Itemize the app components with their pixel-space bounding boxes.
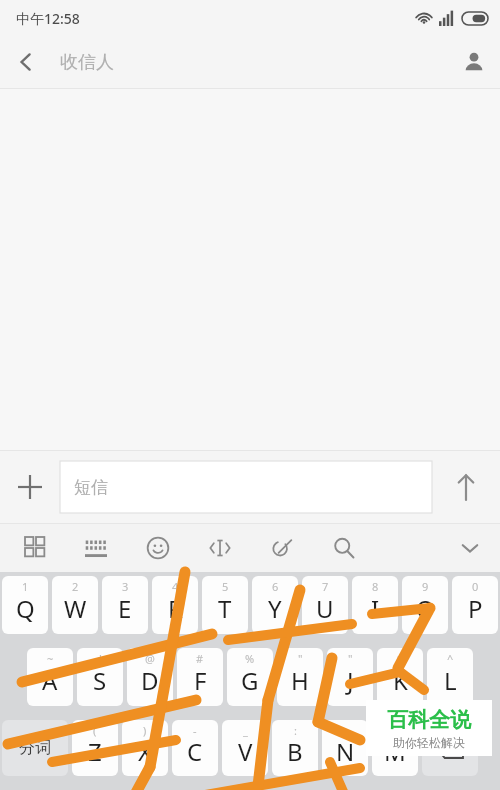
- button[interactable]: Emoji: [136, 526, 180, 570]
- staticText: X: [138, 735, 153, 768]
- button[interactable]: *: [377, 648, 423, 706]
- staticText: 5: [222, 579, 229, 594]
- staticText: M: [384, 735, 406, 768]
- button[interactable]: 1: [2, 576, 48, 634]
- staticText: #: [196, 651, 204, 666]
- staticText: T: [218, 592, 232, 625]
- staticText: L: [444, 664, 457, 697]
- button[interactable]: ?: [372, 720, 418, 776]
- staticText: ;: [344, 723, 347, 738]
- staticText: (: [93, 723, 97, 738]
- staticText: E: [118, 592, 132, 625]
- button[interactable]: Attach: [261, 526, 305, 570]
- button[interactable]: 2: [52, 576, 98, 634]
- staticText: 4: [172, 579, 179, 594]
- staticText: 百科全说: [387, 707, 471, 733]
- staticText: 6: [272, 579, 279, 594]
- button[interactable]: ;: [322, 720, 368, 776]
- staticText: ^: [447, 651, 454, 666]
- staticText: 助你轻松解决: [393, 735, 465, 750]
- staticText: K: [393, 664, 408, 697]
- staticText: F: [194, 664, 207, 697]
- button[interactable]: ~: [27, 648, 73, 706]
- button[interactable]: 6: [252, 576, 298, 634]
- staticText: 3: [122, 579, 129, 594]
- staticText: 2: [72, 579, 79, 594]
- button[interactable]: Backspace: [422, 720, 478, 776]
- button[interactable]: Send: [432, 453, 500, 521]
- staticText: U: [316, 592, 334, 625]
- button[interactable]: ): [122, 720, 168, 776]
- staticText: R: [168, 592, 183, 625]
- button[interactable]: 9: [402, 576, 448, 634]
- staticText: ": [298, 651, 303, 666]
- button[interactable]: (: [72, 720, 118, 776]
- button[interactable]: Edit cursor: [198, 526, 242, 570]
- staticText: ~: [47, 651, 54, 666]
- button[interactable]: Hide keyboard: [448, 526, 492, 570]
- staticText: 0: [472, 579, 479, 594]
- staticText: %: [245, 651, 255, 666]
- staticText: 1: [22, 579, 29, 594]
- button[interactable]: 5: [202, 576, 248, 634]
- staticText: C: [187, 735, 203, 768]
- staticText: J: [347, 664, 354, 697]
- staticText: G: [241, 664, 259, 697]
- button[interactable]: Apps: [14, 526, 58, 570]
- staticText: 分词: [19, 738, 51, 758]
- staticText: 8: [372, 579, 379, 594]
- button[interactable]: @: [127, 648, 173, 706]
- button[interactable]: Back: [0, 36, 52, 88]
- staticText: ): [143, 723, 147, 738]
- staticText: A: [42, 664, 58, 697]
- staticText: W: [64, 592, 87, 625]
- button[interactable]: %: [227, 648, 273, 706]
- staticText: H: [291, 664, 309, 697]
- staticText: 短信: [74, 477, 108, 498]
- button[interactable]: 短信: [60, 461, 432, 513]
- button[interactable]: :: [272, 720, 318, 776]
- button[interactable]: 7: [302, 576, 348, 634]
- staticText: -: [193, 723, 197, 738]
- button[interactable]: ": [277, 648, 323, 706]
- staticText: 7: [322, 579, 329, 594]
- staticText: :: [294, 723, 297, 738]
- staticText: *: [397, 651, 404, 666]
- staticText: N: [336, 735, 355, 768]
- staticText: Q: [16, 592, 35, 625]
- button[interactable]: _: [222, 720, 268, 776]
- staticText: ": [348, 651, 353, 666]
- button[interactable]: 分词: [2, 720, 68, 776]
- staticText: 中午12:58: [16, 9, 80, 28]
- staticText: B: [287, 735, 303, 768]
- staticText: ?: [393, 723, 398, 738]
- button[interactable]: 4: [152, 576, 198, 634]
- button[interactable]: -: [172, 720, 218, 776]
- staticText: O: [416, 592, 435, 625]
- staticText: Y: [268, 592, 282, 625]
- button[interactable]: 8: [352, 576, 398, 634]
- button[interactable]: 0: [452, 576, 498, 634]
- button[interactable]: 3: [102, 576, 148, 634]
- staticText: D: [141, 664, 159, 697]
- staticText: _: [243, 723, 248, 738]
- button[interactable]: ^: [427, 648, 473, 706]
- staticText: 9: [422, 579, 429, 594]
- button[interactable]: Keyboard: [74, 526, 118, 570]
- button[interactable]: 收信人: [60, 51, 448, 74]
- staticText: @: [145, 651, 155, 666]
- button[interactable]: ": [327, 648, 373, 706]
- staticText: !: [99, 651, 102, 666]
- button[interactable]: #: [177, 648, 223, 706]
- staticText: V: [238, 735, 253, 768]
- button[interactable]: Contacts: [448, 36, 500, 88]
- button[interactable]: Search: [322, 526, 366, 570]
- staticText: I: [371, 592, 380, 625]
- button[interactable]: !: [77, 648, 123, 706]
- staticText: Z: [88, 735, 102, 768]
- staticText: S: [93, 664, 107, 697]
- button[interactable]: Add attachment: [0, 457, 60, 517]
- staticText: P: [468, 592, 483, 625]
